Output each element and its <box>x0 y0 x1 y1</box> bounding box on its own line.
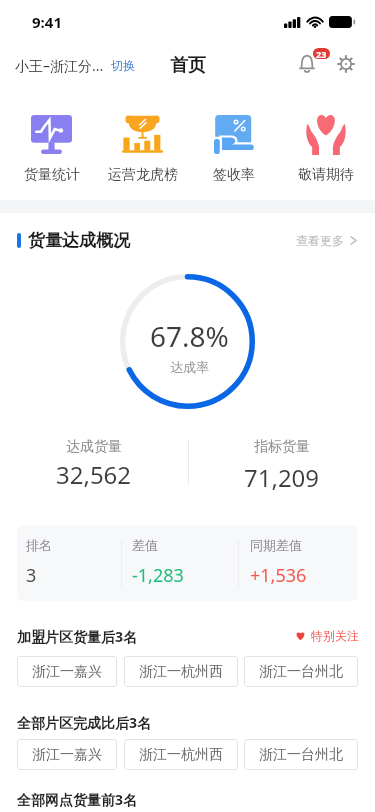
staticText: 9:41 <box>32 12 62 32</box>
staticText: 首页 <box>170 54 206 77</box>
staticText: 浙江一台州北 <box>259 746 343 764</box>
staticText: 敬请期待 <box>298 166 354 184</box>
staticText: 全部片区完成比后3名 <box>17 713 152 732</box>
staticText: 达成率 <box>170 359 209 375</box>
staticText: 同期差值 <box>250 537 302 553</box>
staticText: +1,536 <box>250 563 307 588</box>
staticText: 67.8% <box>150 317 229 355</box>
button[interactable]: 签收率 <box>188 86 279 184</box>
staticText: 差值 <box>132 537 158 553</box>
staticText: 货量达成概况 <box>28 230 130 251</box>
staticText: 3 <box>26 563 37 588</box>
staticText: 排名 <box>26 537 52 553</box>
button[interactable]: 浙江一台州北 <box>244 656 358 687</box>
button[interactable]: 运营龙虎榜 <box>97 86 188 184</box>
staticText: 浙江一嘉兴 <box>32 746 102 764</box>
staticText: 达成货量 <box>66 438 122 456</box>
button[interactable]: 货量统计 <box>6 86 97 184</box>
staticText: 浙江一嘉兴 <box>32 663 102 681</box>
button[interactable]: 浙江一嘉兴 <box>17 656 117 687</box>
staticText: 货量统计 <box>24 166 80 184</box>
staticText: 小王–浙江分... <box>15 56 104 75</box>
button[interactable]: Settings <box>332 50 360 78</box>
staticText: 查看更多 <box>296 233 344 248</box>
button[interactable]: 查看更多 <box>296 233 357 248</box>
button[interactable]: 浙江一杭州西 <box>124 739 238 770</box>
button[interactable]: Notifications <box>292 44 332 76</box>
staticText: 签收率 <box>213 166 255 184</box>
staticText: 32,562 <box>56 458 132 491</box>
button[interactable]: 特别关注 <box>295 628 359 643</box>
staticText: -1,283 <box>132 563 184 588</box>
button[interactable]: 小王–浙江分... <box>15 56 135 75</box>
button[interactable]: 浙江一嘉兴 <box>17 739 117 770</box>
staticText: 浙江一杭州西 <box>139 746 223 764</box>
staticText: 加盟片区货量后3名 <box>17 627 138 646</box>
staticText: 浙江一台州北 <box>259 663 343 681</box>
button[interactable]: 敬请期待 <box>280 86 371 184</box>
staticText: 23 <box>316 48 327 59</box>
staticText: 全部网点货量前3名 <box>17 790 138 809</box>
staticText: 浙江一杭州西 <box>139 663 223 681</box>
staticText: 切换 <box>111 58 135 73</box>
staticText: 特别关注 <box>311 628 359 643</box>
staticText: 71,209 <box>244 461 320 494</box>
button[interactable]: 浙江一杭州西 <box>124 656 238 687</box>
staticText: 运营龙虎榜 <box>108 166 178 184</box>
staticText: 指标货量 <box>254 438 310 456</box>
button[interactable]: 浙江一台州北 <box>244 739 358 770</box>
